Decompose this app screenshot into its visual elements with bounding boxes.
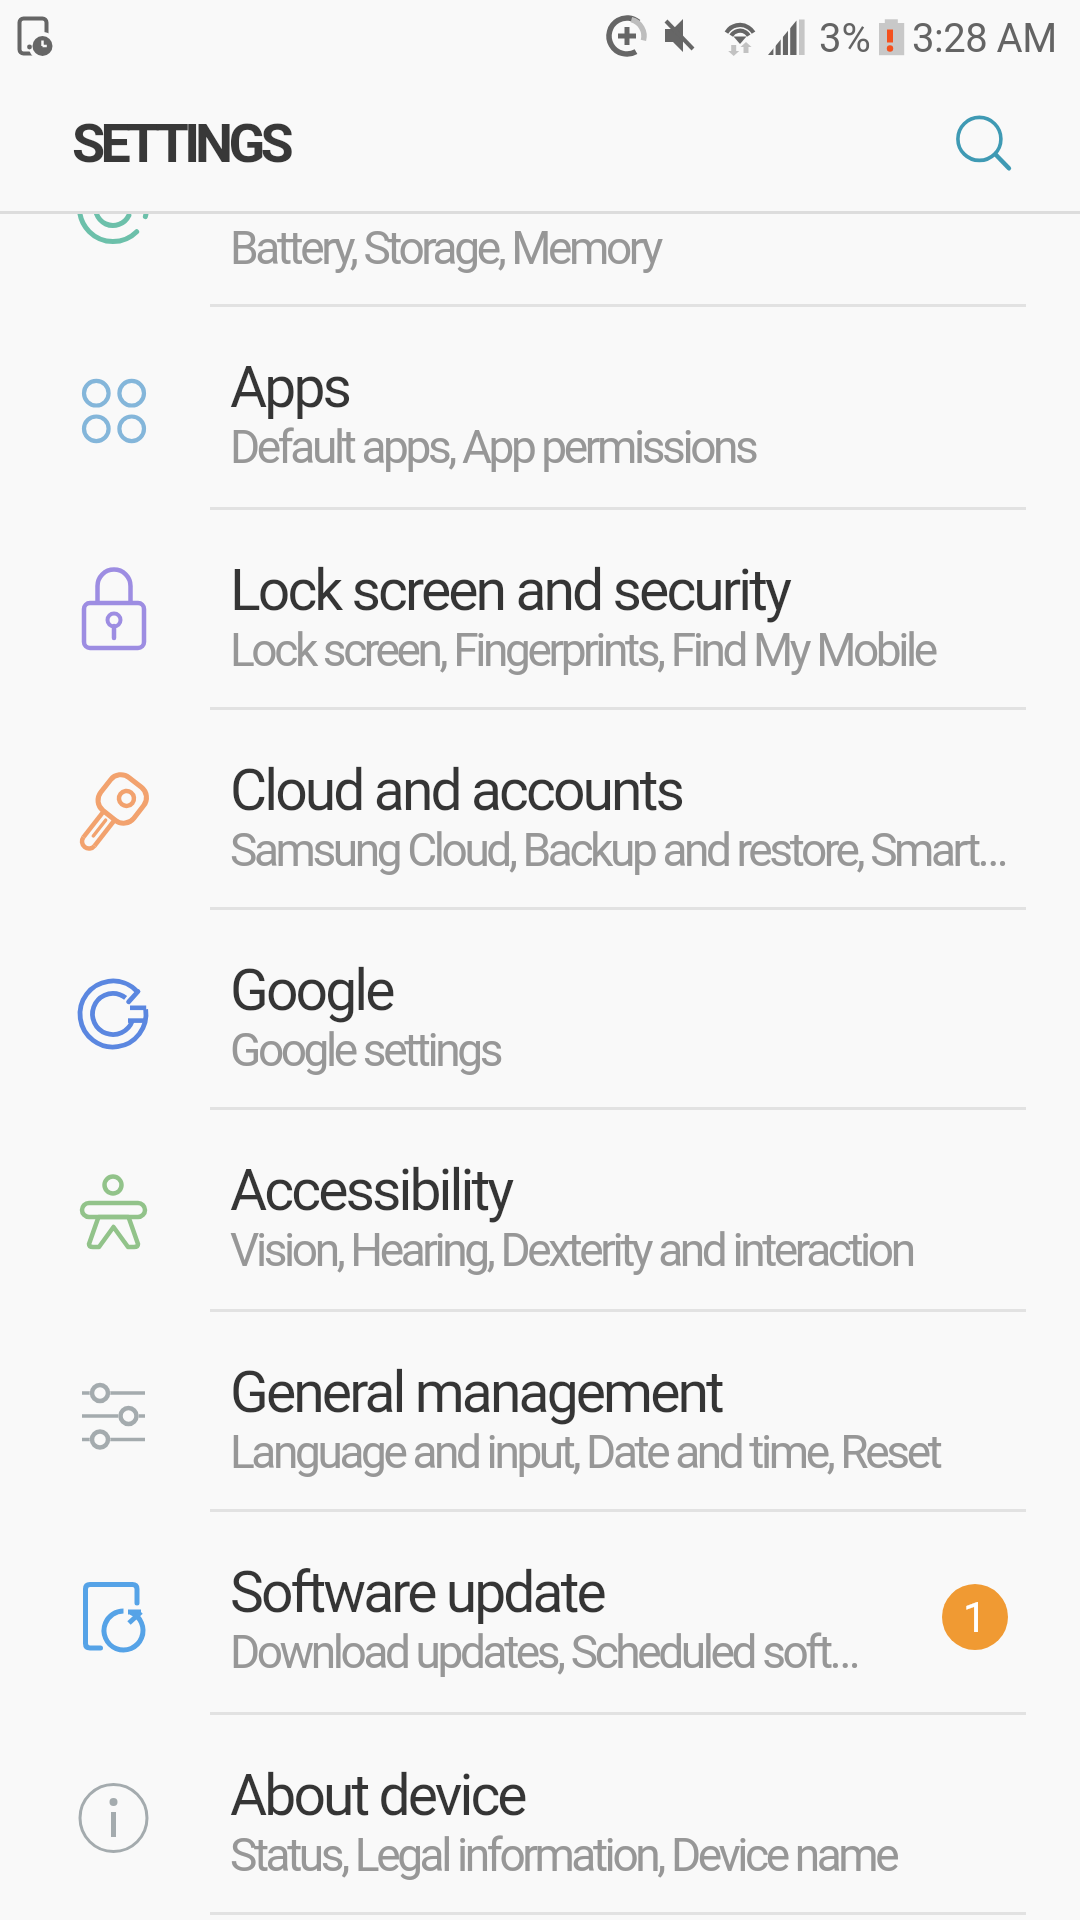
- button[interactable]: General management: [0, 1312, 1080, 1512]
- button[interactable]: About device: [0, 1715, 1080, 1915]
- staticText: About device: [230, 1762, 525, 1829]
- staticText: 3%: [819, 15, 871, 62]
- staticText: Lock screen and security: [230, 557, 790, 624]
- staticText: Default apps, App permissions: [230, 420, 756, 474]
- button[interactable]: [945, 105, 1017, 177]
- staticText: 1: [963, 1593, 987, 1642]
- button[interactable]: Software update: [0, 1512, 1080, 1715]
- staticText: Google: [230, 957, 393, 1024]
- staticText: Status, Legal information, Device name: [230, 1828, 897, 1882]
- button[interactable]: Lock screen and security: [0, 510, 1080, 710]
- button[interactable]: Accessibility: [0, 1110, 1080, 1312]
- staticText: Lock screen, Fingerprints, Find My Mobil…: [230, 623, 935, 677]
- staticText: Samsung Cloud, Backup and restore, Smart…: [230, 823, 1005, 877]
- staticText: 3:28 AM: [912, 15, 1057, 62]
- button[interactable]: Google: [0, 910, 1080, 1110]
- staticText: Language and input, Date and time, Reset: [230, 1425, 940, 1479]
- staticText: Accessibility: [230, 1157, 512, 1224]
- staticText: Cloud and accounts: [230, 757, 682, 824]
- button[interactable]: Cloud and accounts: [0, 710, 1080, 910]
- staticText: Apps: [230, 354, 350, 421]
- staticText: Battery, Storage, Memory: [230, 221, 660, 275]
- staticText: Google settings: [230, 1023, 501, 1077]
- staticText: SETTINGS: [72, 112, 289, 175]
- button[interactable]: Battery, Storage, Memory: [0, 214, 1080, 307]
- staticText: Download updates, Scheduled soft…: [230, 1625, 857, 1679]
- staticText: General management: [230, 1359, 722, 1426]
- staticText: Software update: [230, 1559, 604, 1626]
- staticText: Vision, Hearing, Dexterity and interacti…: [230, 1223, 913, 1277]
- button[interactable]: Apps: [0, 307, 1080, 510]
